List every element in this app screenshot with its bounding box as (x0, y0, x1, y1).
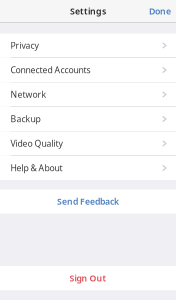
button[interactable]: Network (0, 82, 176, 106)
button[interactable]: Video Quality (0, 131, 176, 155)
staticText: Network (10, 89, 46, 100)
staticText: Privacy (10, 40, 38, 51)
staticText: Settings (70, 5, 106, 17)
button[interactable]: Privacy (0, 33, 176, 57)
button[interactable]: Backup (0, 107, 176, 131)
staticText: Done (149, 5, 171, 17)
staticText: Connected Accounts (10, 64, 90, 76)
staticText: Send Feedback (57, 196, 119, 207)
button[interactable]: Connected Accounts (0, 58, 176, 82)
staticText: Backup (10, 113, 40, 125)
staticText: Video Quality (10, 138, 62, 149)
button[interactable]: Help & About (0, 156, 176, 180)
staticText: Sign Out (69, 272, 106, 284)
button[interactable]: Sign Out (0, 266, 176, 290)
button[interactable]: Done (137, 1, 176, 21)
button[interactable]: Send Feedback (0, 189, 176, 213)
staticText: Help & About (10, 162, 62, 174)
